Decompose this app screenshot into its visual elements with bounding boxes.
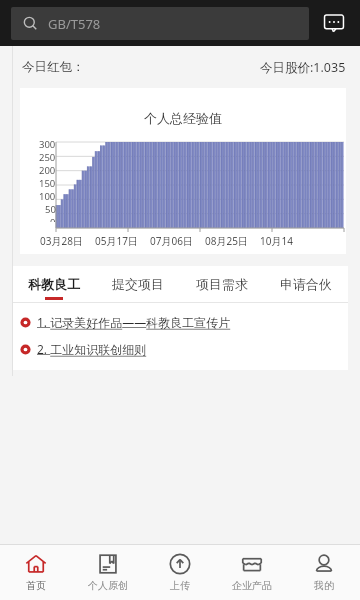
staticText: 07月06日 xyxy=(150,234,193,248)
staticText: 05月17日 xyxy=(95,234,138,248)
staticText: 250 xyxy=(39,151,56,164)
button[interactable]: 提交项目 xyxy=(96,268,180,300)
staticText: 个人原创 xyxy=(88,579,128,592)
staticText: 个人总经验值 xyxy=(144,110,222,126)
staticText: 首页 xyxy=(26,579,46,592)
button[interactable]: Enterprise products xyxy=(216,553,288,592)
staticText: 08月25日 xyxy=(205,234,248,248)
staticText: 03月28日 xyxy=(40,234,83,248)
button[interactable]: Upload xyxy=(144,553,216,592)
other: My originals xyxy=(97,553,119,575)
staticText: 1. 记录美好作品——科教良工宣传片 xyxy=(37,314,231,330)
button[interactable]: 项目需求 xyxy=(180,268,264,300)
other: Upload xyxy=(169,553,191,575)
other: Profile xyxy=(313,553,335,575)
staticText: 我的 xyxy=(314,579,334,592)
staticText: GB/T578 xyxy=(48,15,101,33)
button[interactable]: Messages xyxy=(319,8,349,38)
staticText: 0 xyxy=(50,216,56,222)
staticText: 今日股价:1.035 xyxy=(260,59,346,76)
staticText: 企业产品 xyxy=(232,579,272,592)
other: Enterprise products xyxy=(241,553,263,575)
button[interactable]: My originals xyxy=(72,553,144,592)
button[interactable]: Home xyxy=(0,553,72,592)
button[interactable]: 科教良工 xyxy=(12,268,96,300)
staticText: 申请合伙 xyxy=(280,276,332,292)
staticText: 提交项目 xyxy=(112,276,164,292)
button[interactable]: 1. 记录美好作品——科教良工宣传片 xyxy=(12,311,348,333)
staticText: 2. 工业知识联创细则 xyxy=(37,341,147,357)
staticText: 上传 xyxy=(170,579,190,592)
button[interactable]: Profile xyxy=(288,553,360,592)
staticText: 科教良工 xyxy=(28,276,80,292)
staticText: 150 xyxy=(39,177,56,190)
staticText: 100 xyxy=(39,190,56,203)
button[interactable]: 2. 工业知识联创细则 xyxy=(12,338,348,360)
staticText: 项目需求 xyxy=(196,276,248,292)
staticText: 50 xyxy=(45,203,56,216)
other: Home xyxy=(25,553,47,575)
button[interactable]: GB/T578 xyxy=(11,7,309,40)
staticText: 今日红包： xyxy=(22,59,85,75)
staticText: 300 xyxy=(39,138,56,151)
staticText: 200 xyxy=(39,164,56,177)
staticText: 10月14 xyxy=(260,234,293,248)
button[interactable]: 申请合伙 xyxy=(264,268,348,300)
